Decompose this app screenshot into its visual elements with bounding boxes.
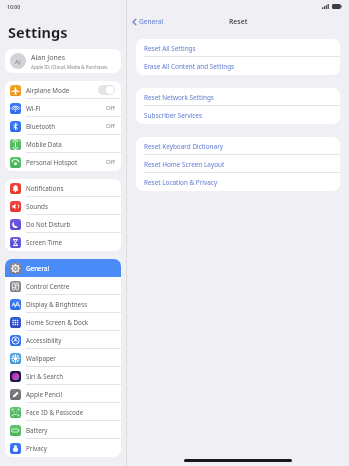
staticText: Display & Brightness [26,300,115,309]
button[interactable]: Do Not Disturb [5,215,121,233]
staticText: Notifications [26,184,115,193]
staticText: Off [106,158,115,166]
staticText: Apple ID, iCloud, Media & Purchases [31,64,108,70]
button[interactable]: Personal Hotspot [5,153,121,171]
staticText: Reset Location & Privacy [144,178,218,187]
button[interactable]: Reset Keyboard Dictionary [136,137,340,155]
staticText: Settings [8,22,68,42]
button[interactable]: General [132,17,164,26]
staticText: General [26,264,115,273]
staticText: Personal Hotspot [26,158,106,167]
button[interactable]: Reset Network Settings [136,88,340,106]
staticText: Battery [26,426,115,435]
button[interactable]: Display & Brightness [5,295,121,313]
button[interactable]: Wi-Fi [5,99,121,117]
button[interactable]: General [5,259,121,277]
staticText: Bluetooth [26,122,106,131]
staticText: Reset Keyboard Dictionary [144,142,224,151]
button[interactable]: Accessibility [5,331,121,349]
staticText: Alan Jones [31,53,66,63]
button[interactable]: Screen Time [5,233,121,251]
staticText: Sounds [26,202,115,211]
button[interactable]: Notifications [5,179,121,197]
staticText: AJ [15,58,21,65]
button[interactable]: Battery [5,421,121,439]
button[interactable]: Bluetooth [5,117,121,135]
staticText: Erase All Content and Settings [144,62,235,71]
staticText: Wallpaper [26,354,115,363]
button[interactable]: Home Screen & Dock [5,313,121,331]
button[interactable]: Subscriber Services [136,106,340,124]
staticText: Privacy [26,444,115,453]
staticText: Off [106,122,115,130]
button[interactable]: Privacy [5,439,121,457]
staticText: Reset Network Settings [144,93,214,102]
button[interactable]: Reset Location & Privacy [136,173,340,191]
staticText: 10:00 [7,3,21,10]
staticText: Do Not Disturb [26,220,115,229]
staticText: Apple Pencil [26,390,115,399]
button[interactable]: Reset Home Screen Layout [136,155,340,173]
button[interactable]: Face ID & Passcode [5,403,121,421]
staticText: General [139,17,164,26]
button[interactable]: Control Centre [5,277,121,295]
staticText: Accessibility [26,336,115,345]
button[interactable]: Sounds [5,197,121,215]
staticText: Screen Time [26,238,115,247]
button[interactable]: Apple Pencil [5,385,121,403]
staticText: Wi-Fi [26,104,106,113]
button[interactable]: Mobile Data [5,135,121,153]
staticText: Siri & Search [26,372,115,381]
button[interactable]: Siri & Search [5,367,121,385]
staticText: Reset All Settings [144,44,196,53]
staticText: Subscriber Services [144,111,203,120]
staticText: Reset [229,17,248,26]
staticText: Control Centre [26,282,115,291]
button[interactable]: Wallpaper [5,349,121,367]
button[interactable]: Reset All Settings [136,39,340,57]
staticText: Off [106,104,115,112]
staticText: Home Screen & Dock [26,318,115,327]
staticText: Face ID & Passcode [26,408,115,417]
button[interactable]: Erase All Content and Settings [136,57,340,75]
button[interactable]: AJ [5,49,121,73]
staticText: Reset Home Screen Layout [144,160,225,169]
staticText: Airplane Mode [26,86,98,95]
button[interactable]: Airplane Mode [5,81,121,99]
staticText: Mobile Data [26,140,115,149]
